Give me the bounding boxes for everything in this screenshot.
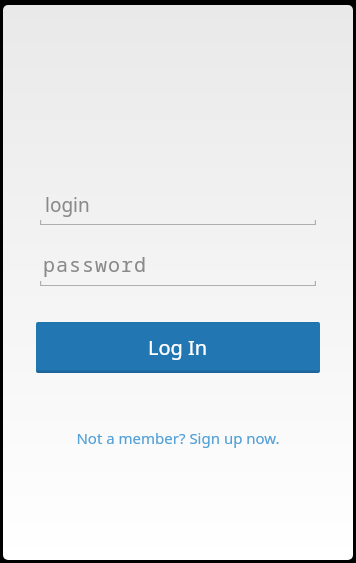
button[interactable]: Log In — [36, 322, 320, 373]
staticText: Log In — [148, 334, 208, 361]
staticText: login — [45, 192, 90, 218]
button[interactable]: login — [40, 192, 316, 225]
button[interactable]: password — [40, 251, 316, 286]
staticText: Not a member? Sign up now. — [76, 428, 280, 448]
staticText: password — [43, 251, 147, 278]
button[interactable]: Not a member? Sign up now. — [3, 428, 353, 448]
